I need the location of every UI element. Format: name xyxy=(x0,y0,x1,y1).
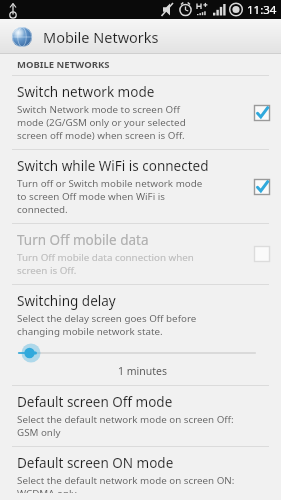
staticText: Switching delay xyxy=(17,292,116,310)
staticText: Switch Network mode to screen Off xyxy=(17,103,180,116)
staticText: Turn off or Switch mobile network mode xyxy=(17,177,203,190)
other: Unchecked xyxy=(253,245,271,263)
staticText: connected. xyxy=(17,203,68,216)
staticText: Default screen ON mode xyxy=(17,454,174,472)
staticText: screen off mode) when screen is Off. xyxy=(17,129,185,142)
staticText: Mobile Networks xyxy=(43,27,159,47)
staticText: 1 minutes xyxy=(118,364,167,378)
staticText: WCDMA only xyxy=(17,487,77,493)
staticText: Default screen Off mode xyxy=(17,393,173,411)
staticText: changing mobile network state. xyxy=(17,325,163,338)
other: Checked xyxy=(253,178,271,196)
button[interactable]: Switching delay xyxy=(0,285,281,385)
button[interactable]: Switching delay slider xyxy=(17,343,267,363)
staticText: GSM only xyxy=(17,426,61,439)
button[interactable]: Default screen ON mode xyxy=(0,447,281,500)
button[interactable]: Switch while WiFi is connected xyxy=(0,150,281,223)
button[interactable]: Turn Off mobile data xyxy=(0,224,281,284)
staticText: to screen Off mode when WiFi is xyxy=(17,190,165,203)
staticText: screen is Off. xyxy=(17,264,77,277)
staticText: MOBILE NETWORKS xyxy=(17,58,110,71)
other: Checked xyxy=(253,104,271,122)
button[interactable]: Default screen Off mode xyxy=(0,386,281,446)
button[interactable]: Switch network mode xyxy=(0,76,281,149)
staticText: Turn Off mobile data xyxy=(17,231,149,249)
staticText: Select the default network mode on scree… xyxy=(17,474,235,487)
staticText: Select the default network mode on scree… xyxy=(17,413,234,426)
staticText: Turn Off mobile data connection when xyxy=(17,251,194,264)
staticText: Select the delay screen goes Off before xyxy=(17,312,197,325)
staticText: mode (2G/GSM only or your selected xyxy=(17,116,186,129)
staticText: 11:34 xyxy=(247,2,277,18)
staticText: Switch while WiFi is connected xyxy=(17,157,209,175)
staticText: Switch network mode xyxy=(17,83,155,101)
